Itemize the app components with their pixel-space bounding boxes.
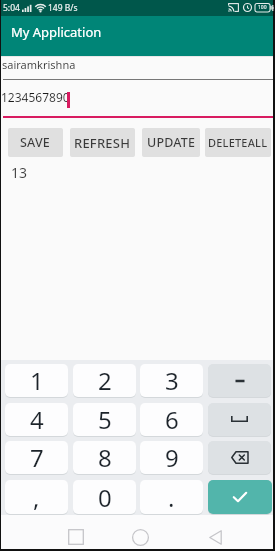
staticText: 3 [165, 364, 179, 397]
button[interactable]: 3 [140, 364, 203, 397]
button[interactable] [208, 364, 271, 397]
staticText: 13 [11, 163, 28, 182]
button[interactable]: REFRESH [70, 128, 135, 157]
staticText: 149 B/s [48, 2, 78, 14]
button[interactable] [1, 82, 273, 118]
button[interactable]: 4 [5, 403, 68, 436]
staticText: . [168, 481, 175, 514]
button[interactable]: 1 [5, 364, 68, 397]
button[interactable] [56, 521, 96, 549]
button[interactable]: 0 [73, 480, 136, 514]
staticText: 5 [98, 403, 112, 436]
staticText: 1234567890 [1, 89, 70, 105]
staticText: sairamkrishna [2, 57, 76, 72]
button[interactable] [195, 521, 235, 549]
staticText: My Application [11, 23, 102, 41]
button[interactable]: UPDATE [142, 128, 200, 157]
staticText: 1 [30, 364, 44, 397]
button[interactable]: . [140, 480, 203, 514]
staticText: 8 [98, 441, 112, 474]
staticText: 100 [258, 4, 267, 11]
button[interactable] [208, 403, 271, 436]
staticText: 5:04 [3, 2, 20, 14]
button[interactable] [120, 521, 160, 549]
button[interactable]: 8 [73, 441, 136, 474]
staticText: 6 [165, 403, 179, 436]
staticText: 2 [98, 364, 112, 397]
button[interactable]: 7 [5, 441, 68, 474]
button[interactable]: SAVE [8, 128, 63, 157]
staticText: DELETEALL [208, 135, 268, 150]
staticText: SAVE [20, 134, 51, 151]
button[interactable]: 2 [73, 364, 136, 397]
button[interactable]: , [5, 480, 68, 514]
button[interactable]: DELETEALL [205, 128, 271, 157]
staticText: UPDATE [147, 134, 196, 151]
staticText: 7 [30, 441, 44, 474]
button[interactable] [1, 56, 273, 81]
button[interactable] [208, 480, 272, 514]
button[interactable] [208, 441, 271, 474]
button[interactable]: 6 [140, 403, 203, 436]
staticText: , [33, 481, 40, 514]
staticText: 0 [98, 481, 112, 514]
button[interactable]: 5 [73, 403, 136, 436]
staticText: 9 [165, 441, 179, 474]
button[interactable]: 9 [140, 441, 203, 474]
staticText: 4 [30, 403, 44, 436]
staticText: REFRESH [74, 134, 131, 152]
